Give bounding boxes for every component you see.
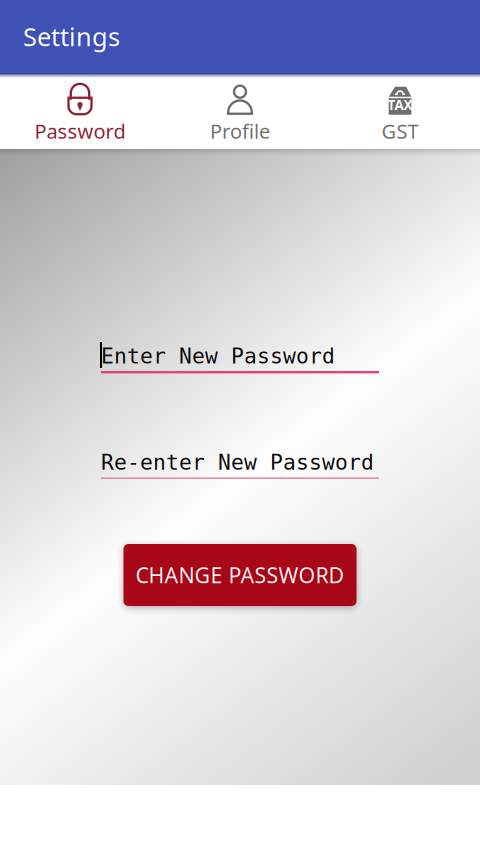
staticText: Profile (210, 118, 270, 144)
staticText: Password (34, 118, 125, 144)
staticText: Enter New Password (101, 344, 335, 368)
button[interactable]: Password (0, 71, 160, 151)
staticText: Settings (23, 20, 120, 53)
button[interactable]: CHANGE PASSWORD (123, 544, 356, 606)
button[interactable]: Profile (160, 71, 320, 151)
staticText: TAX (387, 96, 412, 114)
staticText: Re-enter New Password (101, 450, 374, 474)
button[interactable]: TAX (320, 71, 480, 151)
staticText: CHANGE PASSWORD (135, 561, 344, 589)
staticText: GST (381, 118, 418, 144)
